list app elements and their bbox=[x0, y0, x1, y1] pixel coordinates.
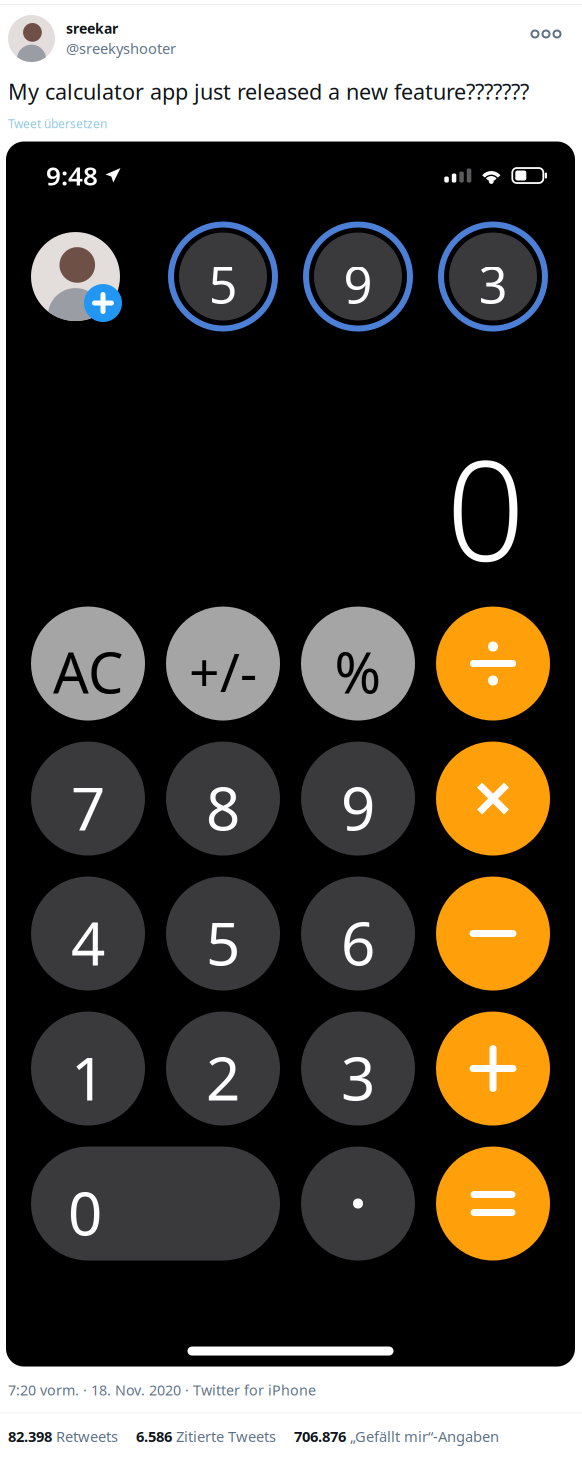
button[interactable]: 3 bbox=[301, 1011, 415, 1125]
staticText: AC bbox=[53, 634, 123, 709]
button[interactable]: 5 bbox=[166, 219, 280, 333]
staticText: 6.586 bbox=[136, 1426, 172, 1446]
button[interactable] bbox=[301, 1146, 415, 1260]
staticText: Retweets bbox=[52, 1426, 118, 1446]
staticText: 3 bbox=[341, 1037, 375, 1117]
staticText: 9:48 bbox=[46, 158, 98, 193]
staticText: @sreekyshooter bbox=[66, 39, 176, 58]
staticText: My calculator app just released a new fe… bbox=[8, 77, 529, 106]
button[interactable]: AC bbox=[31, 606, 145, 720]
button[interactable]: More options bbox=[518, 15, 574, 53]
button[interactable]: 7 bbox=[31, 741, 145, 855]
button[interactable] bbox=[436, 876, 550, 990]
button[interactable]: 9 bbox=[301, 219, 415, 333]
staticText: 3 bbox=[478, 250, 507, 318]
staticText: 8 bbox=[206, 767, 240, 847]
button[interactable]: 6 bbox=[301, 876, 415, 990]
button[interactable]: Tweet übersetzen bbox=[0, 106, 107, 133]
staticText: 0 bbox=[446, 415, 525, 600]
button[interactable] bbox=[436, 1011, 550, 1125]
button[interactable]: Add to story bbox=[31, 219, 145, 333]
staticText: +/- bbox=[189, 636, 257, 707]
staticText: Tweet übersetzen bbox=[8, 116, 107, 131]
staticText: 0 bbox=[68, 1172, 102, 1252]
button[interactable]: 9 bbox=[301, 741, 415, 855]
staticText: 6 bbox=[341, 902, 375, 982]
staticText: 706.876 bbox=[294, 1426, 346, 1446]
button[interactable]: 8 bbox=[166, 741, 280, 855]
staticText: 9 bbox=[343, 250, 372, 318]
staticText: 2 bbox=[206, 1037, 240, 1117]
staticText: 82.398 bbox=[8, 1426, 52, 1446]
button[interactable]: +/- bbox=[166, 606, 280, 720]
staticText: 7 bbox=[71, 767, 105, 847]
staticText: 4 bbox=[71, 902, 105, 982]
button[interactable]: 2 bbox=[166, 1011, 280, 1125]
staticText: % bbox=[334, 634, 381, 709]
staticText: 1 bbox=[71, 1037, 105, 1117]
staticText: sreekar bbox=[66, 19, 118, 38]
button[interactable]: 5 bbox=[166, 876, 280, 990]
button[interactable]: 3 bbox=[436, 219, 550, 333]
button[interactable] bbox=[436, 741, 550, 855]
staticText: 5 bbox=[208, 250, 237, 318]
button[interactable] bbox=[436, 606, 550, 720]
staticText: Zitierte Tweets bbox=[172, 1426, 276, 1446]
button[interactable] bbox=[436, 1146, 550, 1260]
button[interactable]: % bbox=[301, 606, 415, 720]
staticText: 5 bbox=[206, 902, 240, 982]
button[interactable]: 4 bbox=[31, 876, 145, 990]
staticText: 7:20 vorm. · 18. Nov. 2020 · Twitter for… bbox=[8, 1380, 316, 1399]
staticText: „Gefällt mir“-Angaben bbox=[346, 1426, 499, 1446]
staticText: 9 bbox=[341, 767, 375, 847]
button[interactable]: 0 bbox=[31, 1146, 280, 1260]
button[interactable]: 1 bbox=[31, 1011, 145, 1125]
